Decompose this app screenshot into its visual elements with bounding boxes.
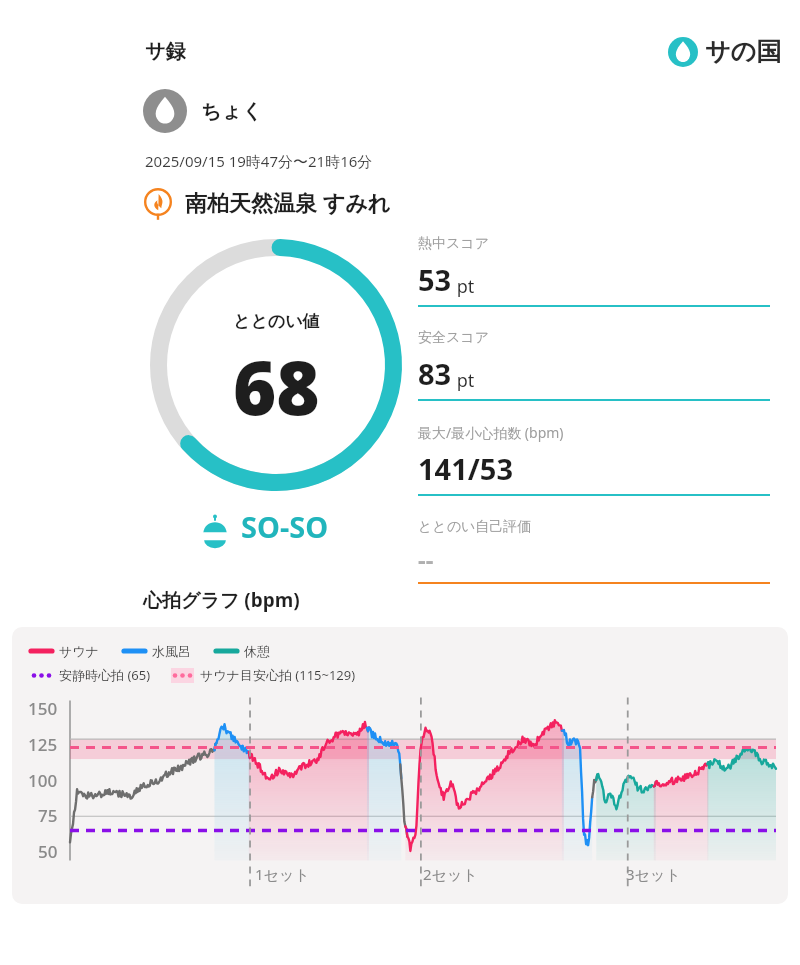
staticText: 南柏天然温泉 すみれ xyxy=(185,187,391,217)
staticText: 75 xyxy=(38,804,58,827)
staticText: 安全スコア xyxy=(418,329,489,347)
button[interactable]: サウナ目安心拍 (115~129) xyxy=(171,666,356,684)
staticText: pt xyxy=(452,274,475,299)
staticText: 53 xyxy=(418,260,452,299)
other: SO-SO 評価 xyxy=(198,510,232,544)
staticText: サ録 xyxy=(145,39,186,64)
staticText: サの国 xyxy=(705,36,782,67)
button[interactable]: 休憩 xyxy=(215,643,270,659)
staticText: 熱中スコア xyxy=(418,235,489,253)
staticText: 心拍グラフ (bpm) xyxy=(143,587,300,613)
button[interactable]: 安全スコア xyxy=(418,329,770,423)
staticText: 水風呂 xyxy=(152,643,191,659)
staticText: pt xyxy=(452,368,475,393)
staticText: 1セット xyxy=(255,864,310,884)
staticText: 休憩 xyxy=(244,643,270,659)
staticText: 2025/09/15 19時47分〜21時16分 xyxy=(145,151,373,171)
button[interactable]: 水風呂 xyxy=(123,643,191,659)
staticText: 141/53 xyxy=(418,449,513,488)
staticText: 安静時心拍 (65) xyxy=(59,666,151,684)
button[interactable]: 最大/最小心拍数 (bpm) xyxy=(418,423,770,518)
button[interactable]: サの国 xyxy=(668,36,782,67)
staticText: ととのい自己評価 xyxy=(418,518,532,536)
staticText: SO-SO xyxy=(241,507,329,546)
staticText: ととのい値 xyxy=(233,311,320,332)
button[interactable]: SO-SO 評価 xyxy=(198,507,329,546)
other: 施設 xyxy=(143,187,173,217)
staticText: 68 xyxy=(233,336,320,437)
staticText: サウナ xyxy=(59,643,99,659)
staticText: 83 xyxy=(418,354,452,393)
staticText: 125 xyxy=(28,733,58,756)
button[interactable]: ちょく xyxy=(143,89,263,133)
staticText: 3セット xyxy=(626,864,681,884)
staticText: -- xyxy=(418,543,434,576)
button[interactable]: サウナ xyxy=(30,643,99,659)
button[interactable]: 施設 xyxy=(143,187,391,217)
staticText: 最大/最小心拍数 (bpm) xyxy=(418,423,564,442)
button[interactable]: ととのい自己評価 xyxy=(418,518,770,587)
button[interactable]: サウナ xyxy=(12,627,788,904)
staticText: 150 xyxy=(28,697,58,720)
staticText: ちょく xyxy=(201,99,263,124)
staticText: 50 xyxy=(38,840,58,863)
button[interactable]: 安静時心拍 (65) xyxy=(30,666,151,684)
staticText: サウナ目安心拍 (115~129) xyxy=(200,666,356,684)
staticText: 100 xyxy=(28,769,58,792)
button[interactable]: 熱中スコア xyxy=(418,235,770,329)
staticText: 2セット xyxy=(423,864,478,884)
